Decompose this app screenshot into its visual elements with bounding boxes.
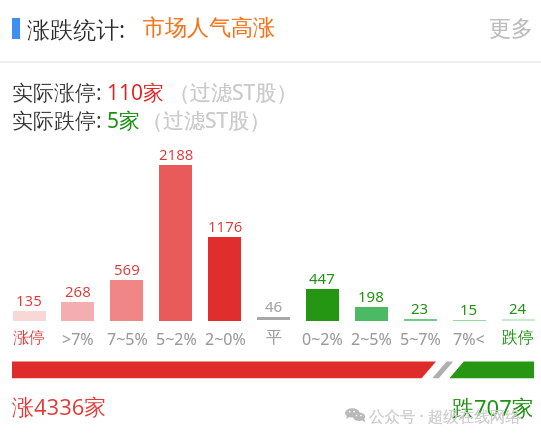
staticText: 涨跌统计:: [27, 13, 126, 44]
button[interactable]: 跌707家: [452, 392, 534, 422]
staticText: 跌停: [502, 328, 534, 348]
staticText: 5~7%: [400, 328, 441, 350]
staticText: 7%<: [453, 328, 485, 350]
staticText: 5~2%: [156, 328, 197, 350]
staticText: 447: [309, 268, 335, 288]
other: WeChat official account: [345, 408, 366, 423]
staticText: （过滤ST股）: [142, 106, 271, 135]
staticText: 15: [460, 299, 478, 319]
staticText: 268: [65, 281, 91, 301]
staticText: 2~0%: [205, 328, 246, 350]
staticText: 24: [509, 298, 527, 318]
staticText: 135: [16, 290, 42, 310]
staticText: 涨停: [13, 328, 45, 348]
staticText: 更多: [489, 15, 533, 43]
staticText: 1176: [208, 216, 243, 236]
staticText: 7~5%: [107, 328, 148, 350]
staticText: 46: [265, 296, 283, 316]
staticText: 23: [411, 298, 429, 318]
staticText: 市场人气高涨: [143, 14, 275, 42]
staticText: 公众号 · 超级在线网络: [369, 405, 521, 426]
staticText: 569: [114, 259, 140, 279]
staticText: 198: [358, 286, 384, 306]
staticText: 平: [266, 328, 282, 348]
staticText: 0~2%: [302, 328, 343, 350]
staticText: （过滤ST股）: [169, 78, 298, 107]
button[interactable]: 更多: [485, 12, 537, 46]
staticText: 实际跌停: 5家: [12, 106, 141, 135]
button[interactable]: 涨4336家: [12, 391, 107, 421]
staticText: >7%: [62, 328, 94, 350]
staticText: 实际涨停: 110家: [12, 78, 165, 107]
staticText: 2188: [159, 144, 194, 164]
staticText: 2~5%: [351, 328, 392, 350]
staticText: 跌707家: [452, 392, 534, 422]
staticText: 涨4336家: [12, 391, 107, 421]
